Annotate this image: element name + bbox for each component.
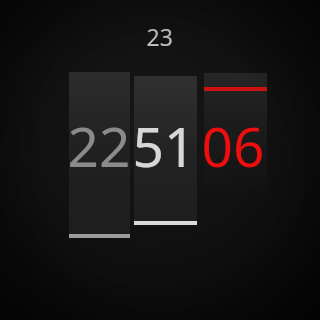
button[interactable]: Flip clock watch face 22:51:06, day 23 [0, 0, 320, 320]
